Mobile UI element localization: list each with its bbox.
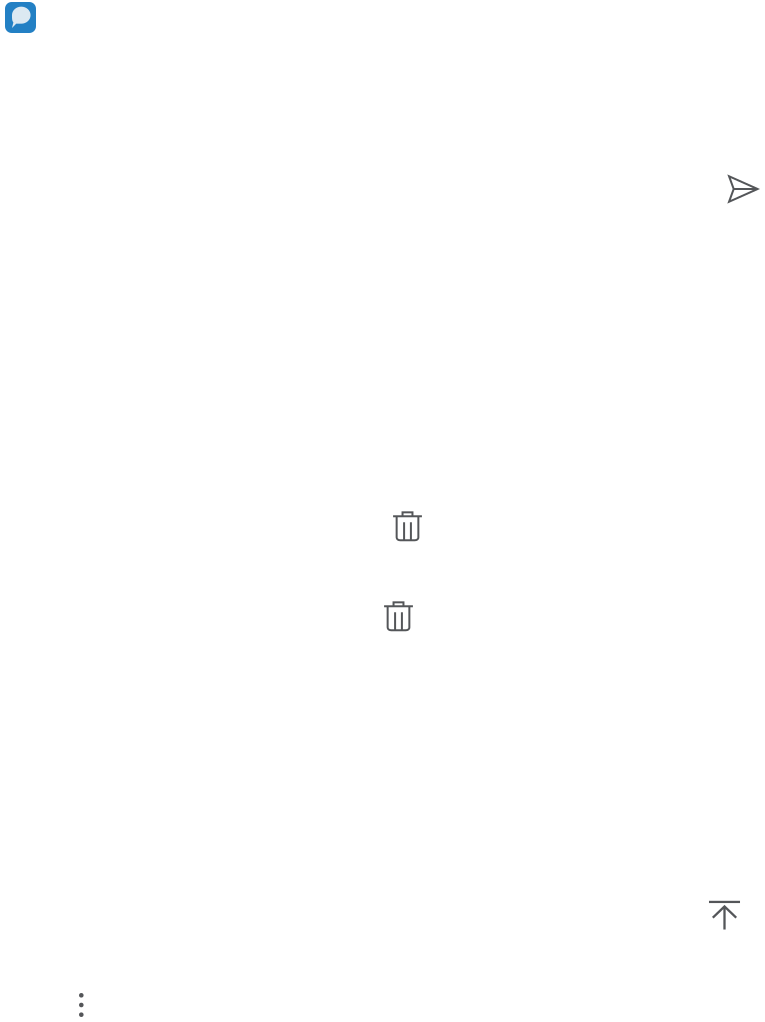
button[interactable]: Delete message [376, 594, 421, 638]
button[interactable]: Scroll to top [701, 896, 748, 940]
button[interactable]: Send [722, 169, 765, 211]
button[interactable]: Delete message [385, 504, 430, 548]
button[interactable]: More options [70, 983, 93, 1022]
button[interactable]: Messages [0, 0, 41, 36]
